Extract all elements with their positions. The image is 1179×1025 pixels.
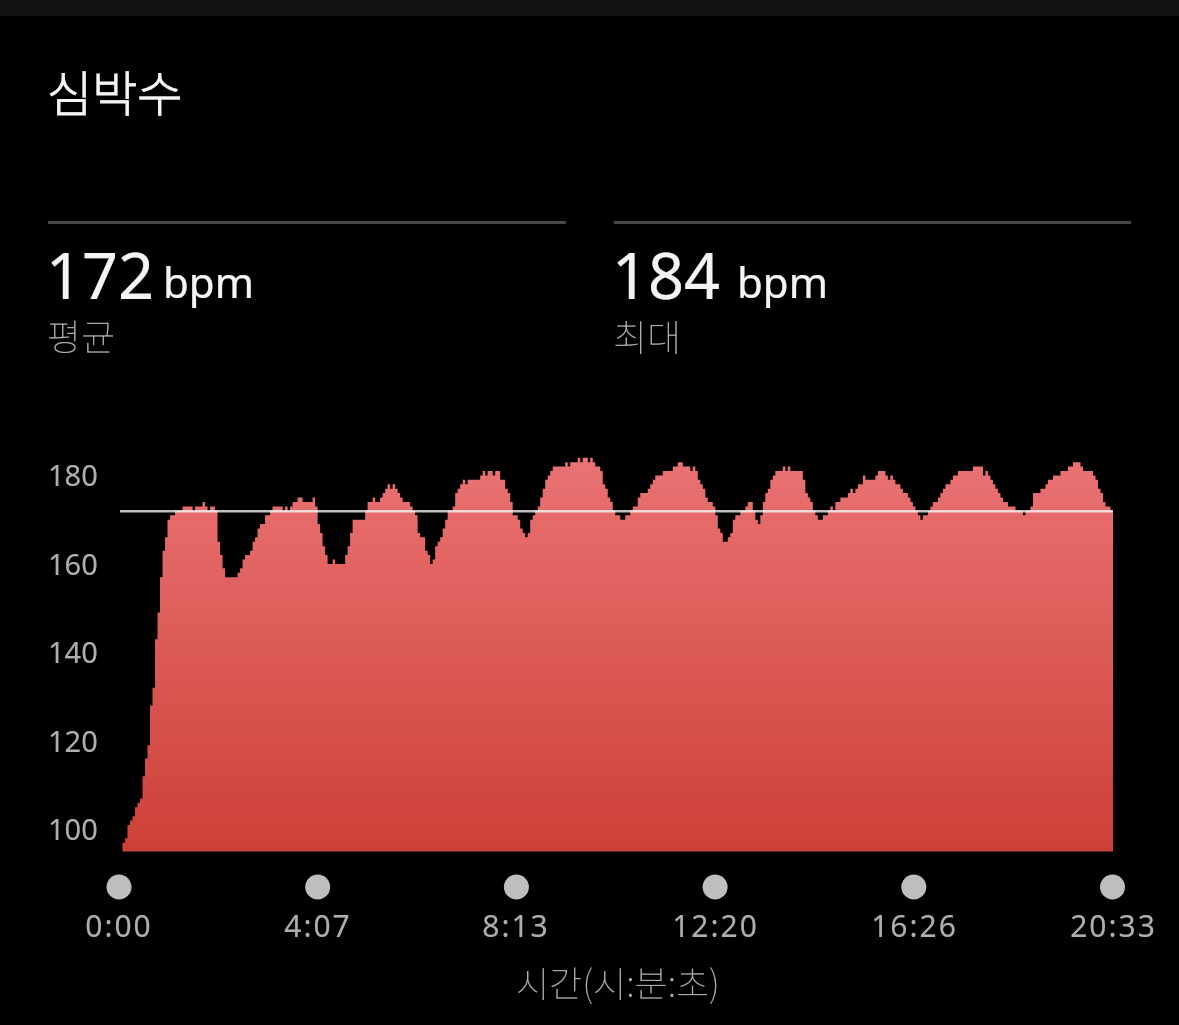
staticText: 시간(시:분:초) xyxy=(516,955,720,1007)
staticText: 16:26 xyxy=(871,905,958,946)
staticText: 100 xyxy=(48,809,98,848)
staticText: bpm xyxy=(163,253,254,310)
staticText: 184 xyxy=(612,232,721,318)
staticText: 4:07 xyxy=(284,905,352,946)
staticText: 0:00 xyxy=(85,905,153,946)
staticText: 12:20 xyxy=(672,905,759,946)
button[interactable]: 184 xyxy=(614,221,1131,364)
staticText: 평균 xyxy=(47,308,116,362)
button[interactable]: Heart rate graph xyxy=(120,440,1113,852)
staticText: bpm xyxy=(737,253,828,310)
staticText: 120 xyxy=(48,721,98,760)
staticText: 20:33 xyxy=(1070,905,1157,946)
staticText: 180 xyxy=(48,455,98,494)
staticText: 160 xyxy=(48,544,98,583)
staticText: 172 xyxy=(46,232,155,318)
staticText: 8:13 xyxy=(482,905,550,946)
staticText: 140 xyxy=(48,632,98,671)
button[interactable]: 172 xyxy=(48,221,566,364)
staticText: 최대 xyxy=(613,308,682,362)
staticText: 심박수 xyxy=(47,55,183,126)
